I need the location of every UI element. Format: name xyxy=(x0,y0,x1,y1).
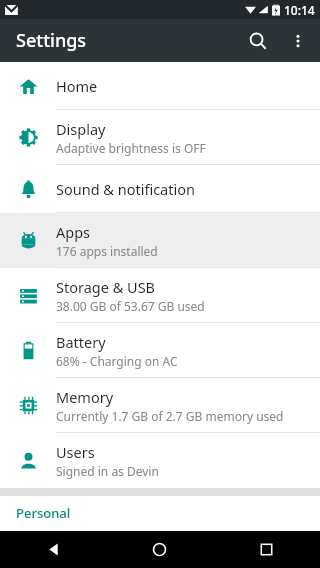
button[interactable]: Apps xyxy=(0,213,320,268)
button[interactable]: Display xyxy=(0,110,320,165)
staticText: Adaptive brightness is OFF xyxy=(56,140,206,156)
button[interactable]: Home xyxy=(106,531,213,568)
button[interactable]: Battery xyxy=(0,323,320,378)
button[interactable]: Sound & notification xyxy=(0,165,320,213)
button[interactable]: Back xyxy=(0,531,106,568)
staticText: Settings xyxy=(16,28,87,53)
button[interactable]: Memory xyxy=(0,378,320,433)
staticText: 10:14 xyxy=(284,2,315,18)
staticText: Sound & notification xyxy=(56,179,195,199)
button[interactable]: Search xyxy=(238,21,278,61)
staticText: 68% - Charging on AC xyxy=(56,353,178,369)
staticText: Memory xyxy=(56,387,114,407)
staticText: Home xyxy=(56,76,98,96)
staticText: Signed in as Devin xyxy=(56,463,159,479)
button[interactable]: Storage & USB xyxy=(0,268,320,323)
button[interactable]: More options xyxy=(278,21,318,61)
button[interactable]: Home xyxy=(0,62,320,110)
staticText: Storage & USB xyxy=(56,277,156,297)
staticText: Users xyxy=(56,442,95,462)
staticText: 38.00 GB of 53.67 GB used xyxy=(56,298,205,314)
staticText: Currently 1.7 GB of 2.7 GB memory used xyxy=(56,408,284,424)
staticText: Display xyxy=(56,119,106,139)
staticText: Apps xyxy=(56,222,91,242)
staticText: 176 apps installed xyxy=(56,243,158,259)
button[interactable]: Recent apps xyxy=(213,531,320,568)
staticText: Personal xyxy=(16,504,71,522)
button[interactable]: Users xyxy=(0,433,320,488)
staticText: Battery xyxy=(56,332,106,352)
